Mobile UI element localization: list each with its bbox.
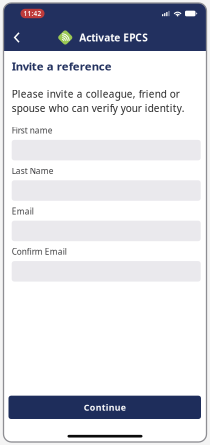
staticText: First name [12, 125, 53, 136]
staticText: Please invite a colleague, friend or spo… [12, 87, 185, 115]
staticText: Email [12, 205, 34, 217]
staticText: 11:42 [23, 9, 41, 18]
staticText: Invite a reference [12, 58, 112, 74]
button[interactable]: Continue [8, 396, 201, 419]
staticText: Activate EPCS [79, 31, 148, 44]
button[interactable]: Back [6, 24, 28, 51]
staticText: Last Name [12, 165, 54, 176]
staticText: Confirm Email [12, 246, 67, 257]
staticText: Continue [84, 401, 126, 413]
